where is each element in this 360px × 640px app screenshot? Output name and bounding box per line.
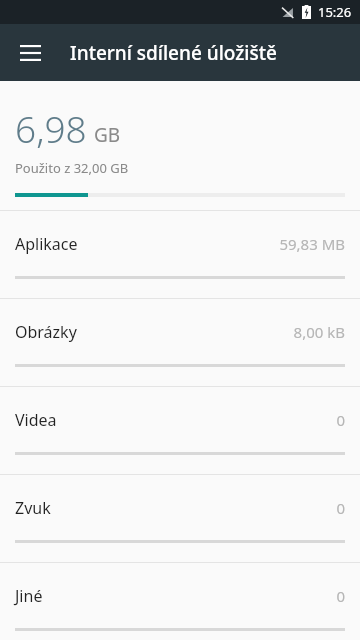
staticText: Použito z 32,00 GB [15,159,129,177]
staticText: 8,00 kB [293,322,345,342]
staticText: 0 [336,586,345,606]
staticText: Interní sdílené úložiště [70,40,277,66]
staticText: Videa [15,409,57,431]
button[interactable]: Jiné [0,562,360,640]
button[interactable]: Zvuk [0,474,360,562]
button[interactable]: Aplikace [0,210,360,298]
staticText: 6,98 [15,103,87,153]
staticText: 15:26 [318,3,352,21]
staticText: GB [94,122,121,148]
staticText: 0 [336,498,345,518]
staticText: 59,83 MB [279,234,345,254]
staticText: 0 [336,410,345,430]
staticText: Obrázky [15,321,77,343]
button[interactable]: Open navigation menu [8,31,52,75]
staticText: Aplikace [15,233,78,255]
staticText: Jiné [15,585,43,607]
button[interactable]: Obrázky [0,298,360,386]
button[interactable]: Videa [0,386,360,474]
staticText: Zvuk [15,497,51,519]
